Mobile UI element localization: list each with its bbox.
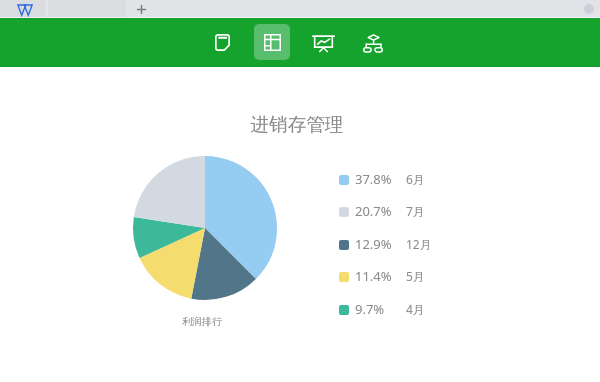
staticText: 12月 <box>406 236 432 252</box>
staticText: 5月 <box>406 268 425 284</box>
staticText: 11.4% <box>355 267 392 285</box>
button[interactable]: Spreadsheet <box>254 24 290 60</box>
button[interactable]: 37.8% <box>337 170 447 190</box>
button[interactable]: Document <box>204 24 240 60</box>
button[interactable]: WPS tab <box>0 0 47 18</box>
staticText: 6月 <box>406 171 425 187</box>
button[interactable]: 20.7% <box>337 202 447 222</box>
button[interactable]: Profile <box>584 4 594 14</box>
staticText: 37.8% <box>355 170 392 188</box>
staticText: 20.7% <box>355 202 392 220</box>
button[interactable]: Flowchart <box>355 24 391 60</box>
button[interactable]: Second tab <box>48 0 126 18</box>
button[interactable]: 9.7% <box>337 300 447 320</box>
button[interactable]: New tab <box>131 0 150 18</box>
staticText: 12.9% <box>355 235 392 253</box>
staticText: 4月 <box>406 301 425 317</box>
button[interactable]: 11.4% <box>337 267 447 287</box>
staticText: 进销存管理 <box>0 113 597 136</box>
button[interactable]: 12.9% <box>337 235 447 255</box>
staticText: 利润排行 <box>182 315 222 328</box>
staticText: 7月 <box>406 203 425 219</box>
button[interactable]: Presentation <box>305 24 341 60</box>
staticText: 9.7% <box>355 300 385 318</box>
